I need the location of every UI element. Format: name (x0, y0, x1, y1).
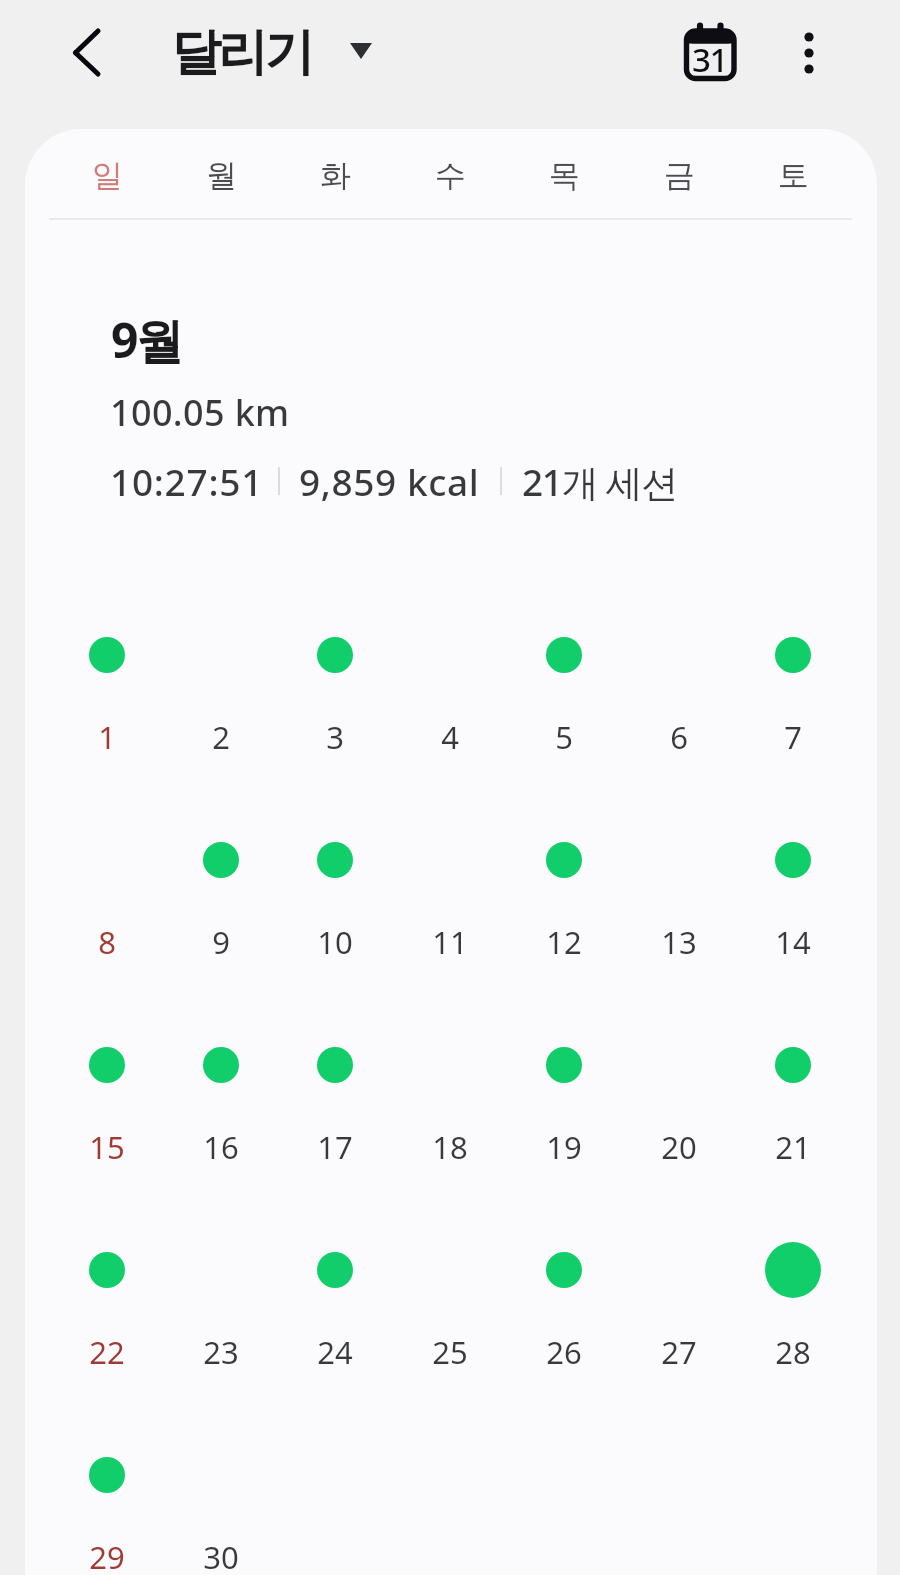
button[interactable]: 23 (169, 1214, 273, 1354)
button[interactable]: 5 (512, 599, 616, 739)
button[interactable]: 15 (55, 1009, 159, 1149)
staticText: 10:27:51 (110, 456, 264, 506)
button[interactable]: 17 (283, 1009, 387, 1149)
button[interactable]: 16 (169, 1009, 273, 1149)
staticText: 6 (670, 716, 688, 758)
button[interactable]: 28 (741, 1214, 845, 1354)
staticText: 9 (212, 921, 230, 963)
staticText: 1 (98, 716, 116, 758)
button[interactable]: 26 (512, 1214, 616, 1354)
button[interactable]: 2 (169, 599, 273, 739)
staticText: 월 (206, 156, 237, 195)
staticText: 4 (441, 716, 459, 758)
button[interactable]: 토 (748, 145, 838, 205)
staticText: 달리기 (171, 21, 312, 84)
staticText: 24 (317, 1331, 353, 1373)
button[interactable]: Back (44, 18, 114, 88)
staticText: 12 (546, 921, 582, 963)
button[interactable]: 금 (634, 145, 724, 205)
button[interactable]: 30 (169, 1419, 273, 1559)
staticText: 25 (432, 1331, 468, 1373)
staticText: 5 (555, 716, 573, 758)
button[interactable]: 일 (62, 145, 152, 205)
staticText: 20 (661, 1126, 697, 1168)
staticText: 8 (98, 921, 116, 963)
button[interactable]: 8 (55, 804, 159, 944)
staticText: 토 (778, 156, 809, 195)
button[interactable]: 7 (741, 599, 845, 739)
staticText: 목 (549, 156, 580, 195)
button[interactable]: 20 (627, 1009, 731, 1149)
staticText: 16 (203, 1126, 239, 1168)
staticText: 3 (326, 716, 344, 758)
button[interactable]: 3 (283, 599, 387, 739)
button[interactable]: 24 (283, 1214, 387, 1354)
button[interactable]: 25 (398, 1214, 502, 1354)
button[interactable]: 수 (405, 145, 495, 205)
staticText: 30 (203, 1536, 239, 1575)
staticText: 2 (212, 716, 230, 758)
staticText: 화 (320, 156, 351, 195)
staticText: 11 (432, 921, 468, 963)
staticText: 15 (89, 1126, 125, 1168)
staticText: 21 (775, 1126, 811, 1168)
button[interactable]: 22 (55, 1214, 159, 1354)
button[interactable]: 12 (512, 804, 616, 944)
button[interactable]: 10 (283, 804, 387, 944)
staticText: 31 (692, 37, 728, 82)
button[interactable]: 21 (741, 1009, 845, 1149)
staticText: 22 (89, 1331, 125, 1373)
staticText: 29 (89, 1536, 125, 1575)
staticText: 7 (784, 716, 802, 758)
staticText: 9,859 kcal (299, 456, 480, 506)
button[interactable]: 13 (627, 804, 731, 944)
button[interactable]: 화 (290, 145, 380, 205)
staticText: 27 (661, 1331, 697, 1373)
staticText: 19 (546, 1126, 582, 1168)
staticText: 13 (661, 921, 697, 963)
button[interactable]: 29 (55, 1419, 159, 1559)
button[interactable]: 달리기 (166, 10, 380, 94)
button[interactable]: Calendar (676, 19, 744, 87)
button[interactable]: 27 (627, 1214, 731, 1354)
staticText: 21개 세션 (522, 456, 678, 507)
staticText: 9월 (111, 307, 181, 373)
staticText: 26 (546, 1331, 582, 1373)
staticText: 14 (775, 921, 811, 963)
button[interactable]: 9 (169, 804, 273, 944)
button[interactable]: More options (775, 19, 843, 87)
staticText: 28 (775, 1331, 811, 1373)
button[interactable]: 19 (512, 1009, 616, 1149)
button[interactable]: 14 (741, 804, 845, 944)
staticText: 23 (203, 1331, 239, 1373)
staticText: 18 (432, 1126, 468, 1168)
staticText: 수 (435, 156, 466, 195)
staticText: 17 (317, 1126, 353, 1168)
staticText: 100.05 km (110, 388, 290, 437)
button[interactable]: 월 (176, 145, 266, 205)
button[interactable]: 4 (398, 599, 502, 739)
button[interactable]: 18 (398, 1009, 502, 1149)
button[interactable]: 6 (627, 599, 731, 739)
staticText: 금 (664, 156, 695, 195)
staticText: 10 (317, 921, 353, 963)
button[interactable]: 1 (55, 599, 159, 739)
button[interactable]: 목 (519, 145, 609, 205)
button[interactable]: 11 (398, 804, 502, 944)
staticText: 일 (92, 156, 123, 195)
